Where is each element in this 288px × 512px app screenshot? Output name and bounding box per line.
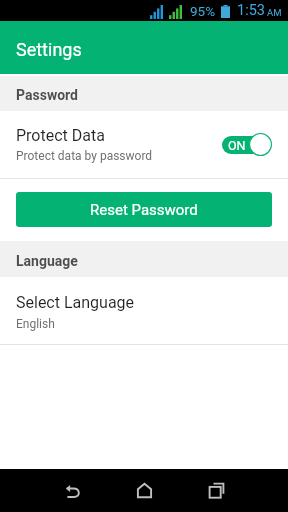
button[interactable]: Recent apps — [180, 469, 252, 512]
staticText: Password — [16, 87, 78, 103]
button[interactable]: Protect data toggle — [222, 133, 272, 156]
staticText: Select Language — [16, 293, 135, 312]
button[interactable]: Select Language — [0, 277, 288, 344]
button[interactable]: Home — [108, 469, 180, 512]
staticText: Protect Data — [16, 126, 105, 145]
button[interactable]: Back — [36, 469, 108, 512]
button[interactable]: Reset Password — [16, 192, 272, 227]
staticText: 1:53 — [237, 2, 265, 19]
staticText: English — [16, 317, 55, 331]
staticText: Settings — [16, 39, 82, 60]
staticText: AM — [267, 7, 282, 18]
staticText: ON — [228, 138, 246, 153]
staticText: Reset Password — [90, 201, 198, 219]
staticText: Language — [16, 253, 78, 269]
staticText: 95% — [190, 3, 216, 19]
staticText: Protect data by password — [16, 149, 153, 163]
button[interactable]: Protect Data — [0, 111, 288, 178]
